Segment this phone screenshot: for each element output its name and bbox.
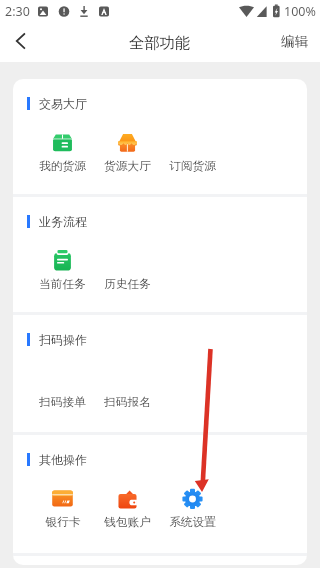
staticText: 扫码报名 [104, 395, 151, 410]
button[interactable]: 我的货源 [30, 132, 95, 174]
staticText: 扫码接单 [39, 395, 86, 410]
staticText: 订阅货源 [169, 159, 216, 174]
staticText: 当前任务 [39, 277, 86, 292]
button[interactable]: 当前任务 [30, 250, 95, 292]
button[interactable]: 钱包账户 [95, 488, 160, 530]
button[interactable]: 货源大厅 [95, 132, 160, 174]
staticText: 2:30 [5, 3, 30, 20]
button[interactable]: Back [0, 22, 40, 60]
button[interactable]: 银行卡 [30, 488, 95, 530]
staticText: 系统设置 [169, 515, 216, 530]
staticText: 货源大厅 [104, 159, 151, 174]
staticText: 交易大厅 [39, 96, 87, 111]
staticText: 钱包账户 [104, 515, 151, 530]
staticText: 历史任务 [104, 277, 151, 292]
button[interactable]: 编辑 [267, 26, 320, 57]
button[interactable]: 历史任务 [95, 250, 160, 292]
staticText: 100% [284, 3, 316, 20]
staticText: 编辑 [281, 33, 308, 50]
button[interactable]: 订阅货源 [160, 132, 225, 174]
staticText: 其他操作 [39, 452, 87, 467]
button[interactable]: 系统设置 [160, 488, 225, 530]
button[interactable]: 扫码报名 [95, 368, 160, 410]
staticText: 我的货源 [39, 159, 86, 174]
button[interactable]: 扫码接单 [30, 368, 95, 410]
staticText: 银行卡 [45, 515, 81, 530]
staticText: 全部功能 [129, 33, 191, 52]
staticText: 业务流程 [39, 214, 87, 229]
staticText: 扫码操作 [39, 332, 87, 347]
